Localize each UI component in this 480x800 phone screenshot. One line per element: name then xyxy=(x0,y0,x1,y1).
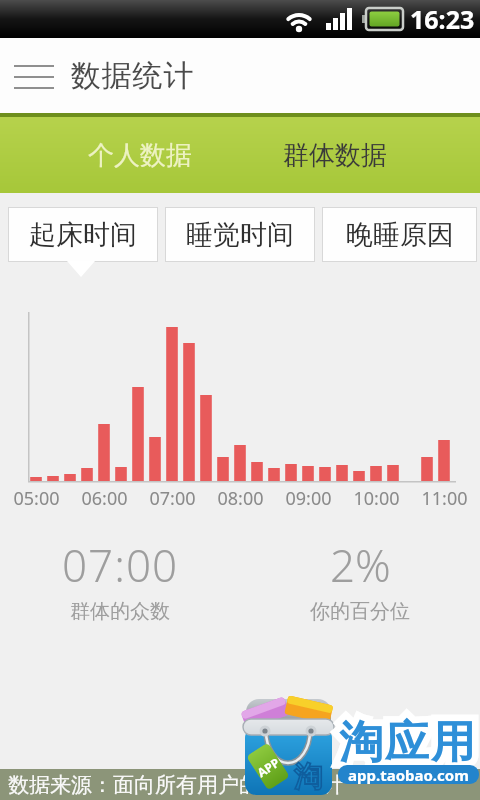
staticText: 晚睡原因 xyxy=(346,218,454,252)
staticText: 群体数据 xyxy=(283,139,387,172)
button[interactable]: 淘 xyxy=(243,697,334,797)
staticText: 个人数据 xyxy=(88,139,192,172)
button[interactable]: 群体数据 xyxy=(260,117,410,193)
staticText: 数据统计 xyxy=(70,57,194,95)
staticText: 你的百分位 xyxy=(310,599,410,624)
staticText: 05:00 xyxy=(13,486,60,510)
staticText: 群体的众数 xyxy=(70,599,170,624)
staticText: 睡觉时间 xyxy=(186,218,294,252)
staticText: 08:00 xyxy=(217,486,264,510)
staticText: 淘应用 xyxy=(338,715,476,770)
button[interactable]: 睡觉时间 xyxy=(166,208,314,261)
staticText: 起床时间 xyxy=(29,218,137,252)
staticText: 06:00 xyxy=(81,486,128,510)
staticText: 07:00 xyxy=(62,535,179,595)
staticText: 11:00 xyxy=(421,486,468,510)
staticText: 10:00 xyxy=(353,486,400,510)
staticText: app.taobao.com xyxy=(348,765,469,784)
button[interactable]: 数据统计 xyxy=(0,38,480,113)
button[interactable]: 起床时间 xyxy=(9,208,157,261)
button[interactable]: 晚睡原因 xyxy=(323,208,476,261)
staticText: 16:23 xyxy=(410,2,475,36)
staticText: APP xyxy=(254,754,283,780)
button[interactable]: 个人数据 xyxy=(65,117,215,193)
staticText: 2% xyxy=(330,535,391,595)
staticText: 09:00 xyxy=(285,486,332,510)
button[interactable]: 淘应用 xyxy=(333,714,480,770)
staticText: 07:00 xyxy=(149,486,196,510)
staticText: 数据来源：面向所有用户的抽样统计 xyxy=(8,772,344,798)
staticText: 淘 xyxy=(294,759,322,794)
staticText: 淘应用 xyxy=(338,715,476,770)
button[interactable]: app.taobao.com xyxy=(338,765,479,784)
